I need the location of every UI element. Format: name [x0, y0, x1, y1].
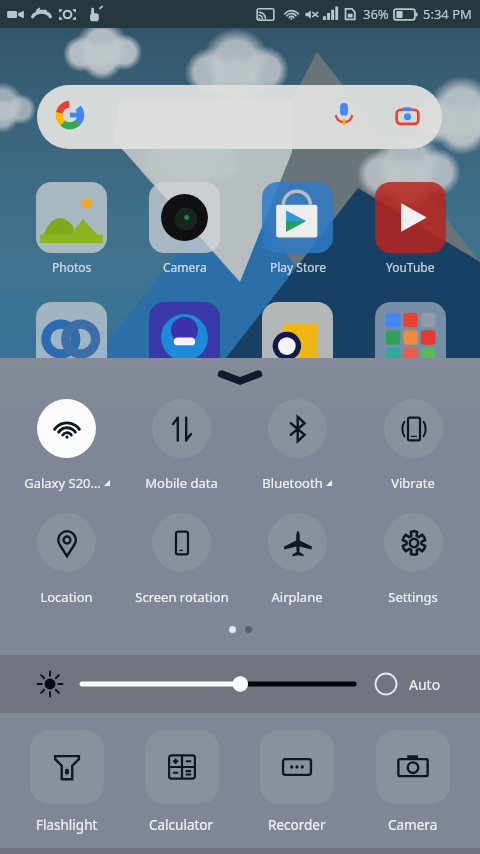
staticText: Bluetooth	[262, 474, 323, 492]
staticText: Airplane	[271, 588, 323, 606]
button[interactable]: Brightness slider	[74, 672, 362, 696]
button[interactable]: Collapse panel	[218, 371, 262, 385]
button[interactable]: App	[262, 302, 333, 373]
staticText: Screen rotation	[135, 588, 229, 606]
staticText: Galaxy S20…	[24, 474, 101, 492]
button[interactable]: Play Store	[262, 182, 333, 253]
button[interactable]: Brightness	[37, 671, 63, 697]
button[interactable]: Voice search	[331, 101, 357, 127]
staticText: Camera	[388, 816, 438, 834]
button[interactable]: Camera	[149, 182, 220, 253]
staticText: 5:34 PM	[423, 5, 472, 23]
button[interactable]: Screen rotation	[124, 513, 239, 606]
staticText: YouTube	[386, 259, 435, 275]
button[interactable]: Vibrate	[355, 399, 471, 492]
staticText: Play Store	[270, 259, 326, 275]
button[interactable]: App	[149, 302, 220, 373]
staticText: Recorder	[268, 816, 326, 834]
button[interactable]: Google search	[37, 85, 442, 149]
button[interactable]: App	[36, 302, 107, 373]
staticText: Flashlight	[36, 816, 98, 834]
button[interactable]: Recorder	[239, 730, 355, 834]
button[interactable]: Auto	[371, 669, 441, 699]
staticText: Auto	[409, 675, 441, 694]
staticText: Settings	[388, 588, 438, 606]
staticText: Calculator	[149, 816, 214, 834]
button[interactable]: Mobile data	[124, 399, 239, 492]
button[interactable]: App	[375, 302, 446, 373]
button[interactable]: YouTube	[375, 182, 446, 253]
staticText: Mobile data	[145, 474, 218, 492]
staticText: 36%	[363, 5, 389, 23]
button[interactable]: Photos	[36, 182, 107, 253]
button[interactable]: Location	[9, 513, 124, 606]
button[interactable]: Airplane	[239, 513, 355, 606]
staticText: Location	[40, 588, 93, 606]
button[interactable]: Google Lens	[394, 103, 421, 130]
button[interactable]: Bluetooth	[239, 399, 355, 492]
staticText: Vibrate	[391, 474, 435, 492]
button[interactable]: Galaxy S20…	[9, 399, 124, 492]
staticText: Photos	[52, 259, 92, 275]
button[interactable]: Camera	[355, 730, 471, 834]
staticText: Camera	[163, 259, 207, 275]
button[interactable]: Calculator	[124, 730, 239, 834]
button[interactable]: Settings	[355, 513, 471, 606]
button[interactable]: Flashlight	[9, 730, 124, 834]
